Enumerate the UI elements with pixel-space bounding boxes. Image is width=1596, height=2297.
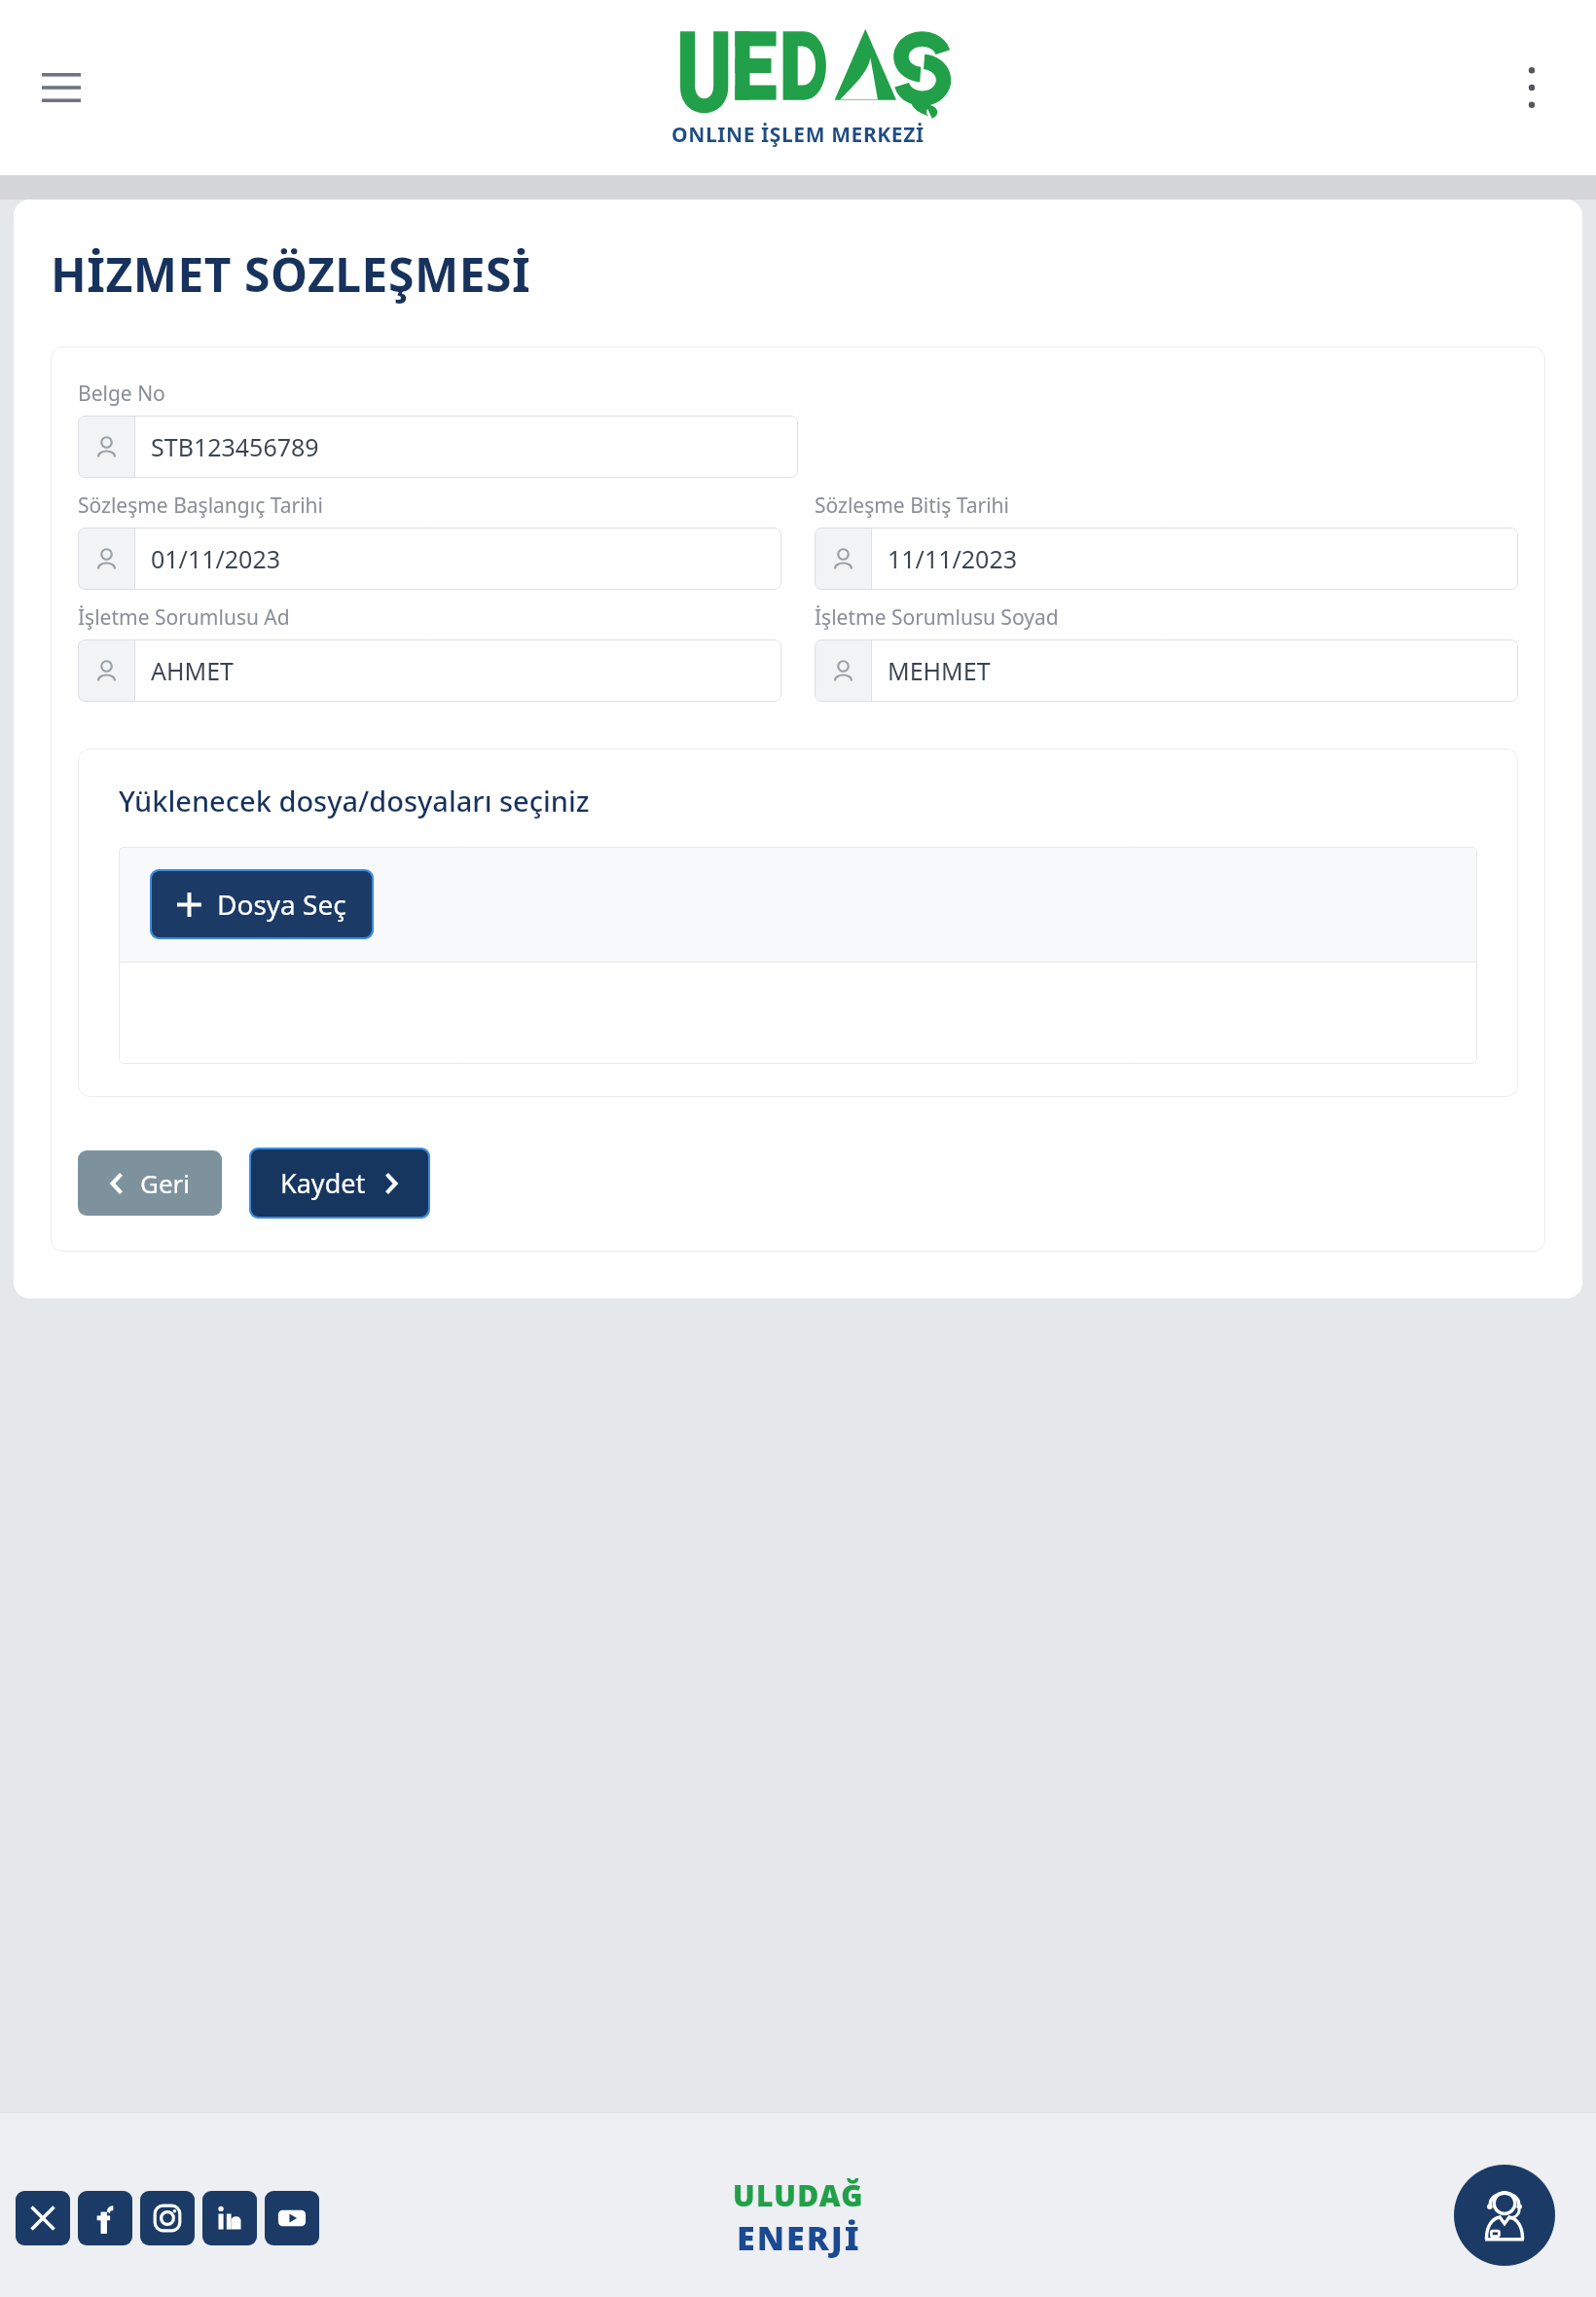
staticText: İşletme Sorumlusu Ad (78, 603, 290, 632)
staticText: Kaydet (280, 1165, 366, 1201)
button[interactable]: STB123456789 (78, 416, 798, 478)
staticText: Geri (140, 1166, 191, 1200)
button[interactable]: Instagram (140, 2191, 195, 2245)
staticText: AHMET (151, 654, 234, 687)
staticText: ENERJİ (737, 2215, 861, 2260)
button[interactable]: LinkedIn (202, 2191, 257, 2245)
button[interactable]: AHMET (78, 639, 781, 702)
staticText: STB123456789 (151, 430, 319, 463)
staticText: 01/11/2023 (151, 542, 281, 575)
button[interactable]: X (16, 2191, 70, 2245)
button[interactable]: YouTube (265, 2191, 319, 2245)
staticText: MEHMET (888, 654, 991, 687)
staticText: ONLINE İŞLEM MERKEZİ (671, 121, 925, 149)
button[interactable]: Kaydet (251, 1149, 428, 1217)
button[interactable]: More options (1503, 58, 1561, 117)
staticText: Belge No (78, 380, 165, 408)
staticText: İşletme Sorumlusu Soyad (815, 603, 1059, 632)
button[interactable]: MEHMET (815, 639, 1518, 702)
button[interactable]: Dosya Seç (152, 871, 372, 937)
button[interactable]: Live support (1454, 2165, 1555, 2266)
staticText: HİZMET SÖZLEŞMESİ (51, 242, 531, 306)
button[interactable]: 11/11/2023 (815, 528, 1518, 590)
button[interactable]: Facebook (78, 2191, 132, 2245)
button[interactable]: Menu (29, 55, 93, 120)
button[interactable]: Geri (78, 1150, 222, 1216)
staticText: Yüklenecek dosya/dosyaları seçiniz (119, 782, 590, 820)
staticText: Dosya Seç (217, 886, 346, 923)
staticText: Sözleşme Bitiş Tarihi (815, 492, 1010, 520)
button[interactable]: 01/11/2023 (78, 528, 781, 590)
staticText: ULUDAĞ (733, 2175, 864, 2215)
staticText: Sözleşme Başlangıç Tarihi (78, 492, 323, 520)
staticText: 11/11/2023 (888, 542, 1018, 575)
